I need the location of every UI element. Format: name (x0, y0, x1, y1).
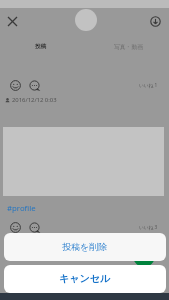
staticText: 2016/12/12 0:03 (12, 96, 57, 104)
button[interactable]: 写真・動画 (86, 38, 169, 55)
staticText: キャンセル (59, 272, 111, 285)
button[interactable]: Create post (133, 245, 155, 267)
staticText: 投稿を削除 (62, 241, 108, 252)
button[interactable]: 投稿 (0, 38, 83, 55)
button[interactable]: Comment (27, 220, 41, 234)
staticText: 投稿 (35, 43, 47, 50)
button[interactable]: キャンセル (4, 265, 166, 293)
button[interactable]: Close (4, 13, 21, 30)
button[interactable]: Like (8, 78, 22, 92)
staticText: いいね 3 (139, 224, 158, 230)
button[interactable]: Download (147, 13, 163, 29)
button[interactable]: 投稿を削除 (4, 233, 166, 261)
staticText: 写真・動画 (114, 43, 143, 50)
staticText: #profile (7, 203, 36, 214)
staticText: いいね 1 (139, 82, 158, 88)
button[interactable]: Like (8, 220, 22, 234)
button[interactable]: Comment (27, 78, 41, 92)
